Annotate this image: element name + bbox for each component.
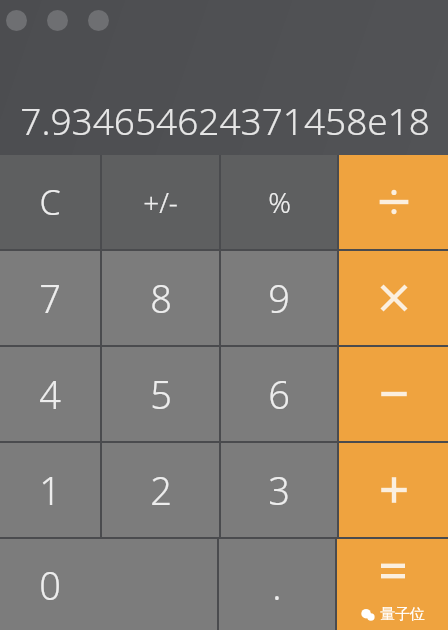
button[interactable]: Zoom window (88, 10, 109, 31)
button[interactable]: Close window (6, 10, 27, 31)
button[interactable]: 7 (0, 251, 100, 345)
button[interactable]: 0 (0, 539, 217, 630)
staticText: 3 (268, 464, 290, 516)
button[interactable]: Multiply (339, 251, 448, 345)
staticText: % (268, 183, 291, 221)
staticText: 量子位 (380, 605, 425, 624)
staticText: . (272, 559, 282, 611)
staticText: 1 (39, 464, 61, 516)
button[interactable]: C (0, 155, 100, 249)
button[interactable]: 1 (0, 443, 100, 537)
button[interactable]: 5 (102, 347, 219, 441)
staticText: 4 (39, 368, 61, 420)
staticText: 7.934654624371458e18 (0, 95, 430, 145)
staticText: 6 (268, 368, 290, 420)
staticText: 9 (268, 272, 290, 324)
button[interactable]: Plus minus (102, 155, 219, 249)
button[interactable]: Minus (339, 347, 448, 441)
button[interactable]: Decimal point (219, 539, 335, 630)
staticText: 5 (150, 368, 172, 420)
button[interactable]: 4 (0, 347, 100, 441)
button[interactable]: Equals (337, 539, 448, 630)
button[interactable]: 3 (221, 443, 337, 537)
button[interactable]: 9 (221, 251, 337, 345)
staticText: 2 (150, 464, 172, 516)
staticText: +/- (143, 183, 178, 221)
staticText: 8 (150, 272, 172, 324)
staticText: 7 (39, 272, 61, 324)
button[interactable]: 6 (221, 347, 337, 441)
button[interactable]: Minimize window (47, 10, 68, 31)
button[interactable]: Percent (221, 155, 337, 249)
button[interactable]: Divide (339, 155, 448, 249)
staticText: 0 (39, 559, 61, 611)
button[interactable]: Plus (339, 443, 448, 537)
button[interactable]: 8 (102, 251, 219, 345)
staticText: C (39, 179, 61, 225)
button[interactable]: 2 (102, 443, 219, 537)
